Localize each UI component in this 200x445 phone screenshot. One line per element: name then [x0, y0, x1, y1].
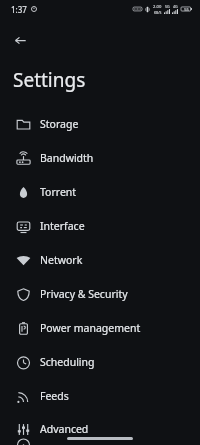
button[interactable]: Interface: [0, 209, 200, 243]
staticText: Network: [40, 253, 83, 267]
button[interactable]: Torrent: [0, 175, 200, 209]
staticText: Privacy & Security: [40, 287, 128, 301]
staticText: Bandwidth: [40, 151, 94, 165]
button[interactable]: Bandwidth: [0, 141, 200, 175]
staticText: 4G: [173, 4, 178, 9]
button[interactable]: Storage: [0, 107, 200, 141]
staticText: Interface: [40, 219, 85, 233]
button[interactable]: Network: [0, 243, 200, 277]
staticText: KB/S: [154, 10, 162, 15]
staticText: Torrent: [40, 185, 77, 199]
staticText: 5G: [165, 4, 170, 9]
staticText: 55: [184, 7, 189, 12]
staticText: Settings: [13, 67, 86, 93]
staticText: 2.00: [153, 4, 162, 10]
button[interactable]: Feeds: [0, 379, 200, 413]
staticText: Storage: [40, 117, 79, 131]
staticText: Advanced: [40, 422, 89, 436]
button[interactable]: Advanced: [0, 413, 200, 445]
button[interactable]: Power management: [0, 311, 200, 345]
staticText: 1:37: [11, 4, 27, 15]
staticText: Scheduling: [40, 355, 95, 369]
button[interactable]: Privacy & Security: [0, 277, 200, 311]
button[interactable]: Back: [7, 27, 33, 53]
button[interactable]: Scheduling: [0, 345, 200, 379]
staticText: Feeds: [40, 389, 69, 403]
staticText: Power management: [40, 321, 141, 335]
